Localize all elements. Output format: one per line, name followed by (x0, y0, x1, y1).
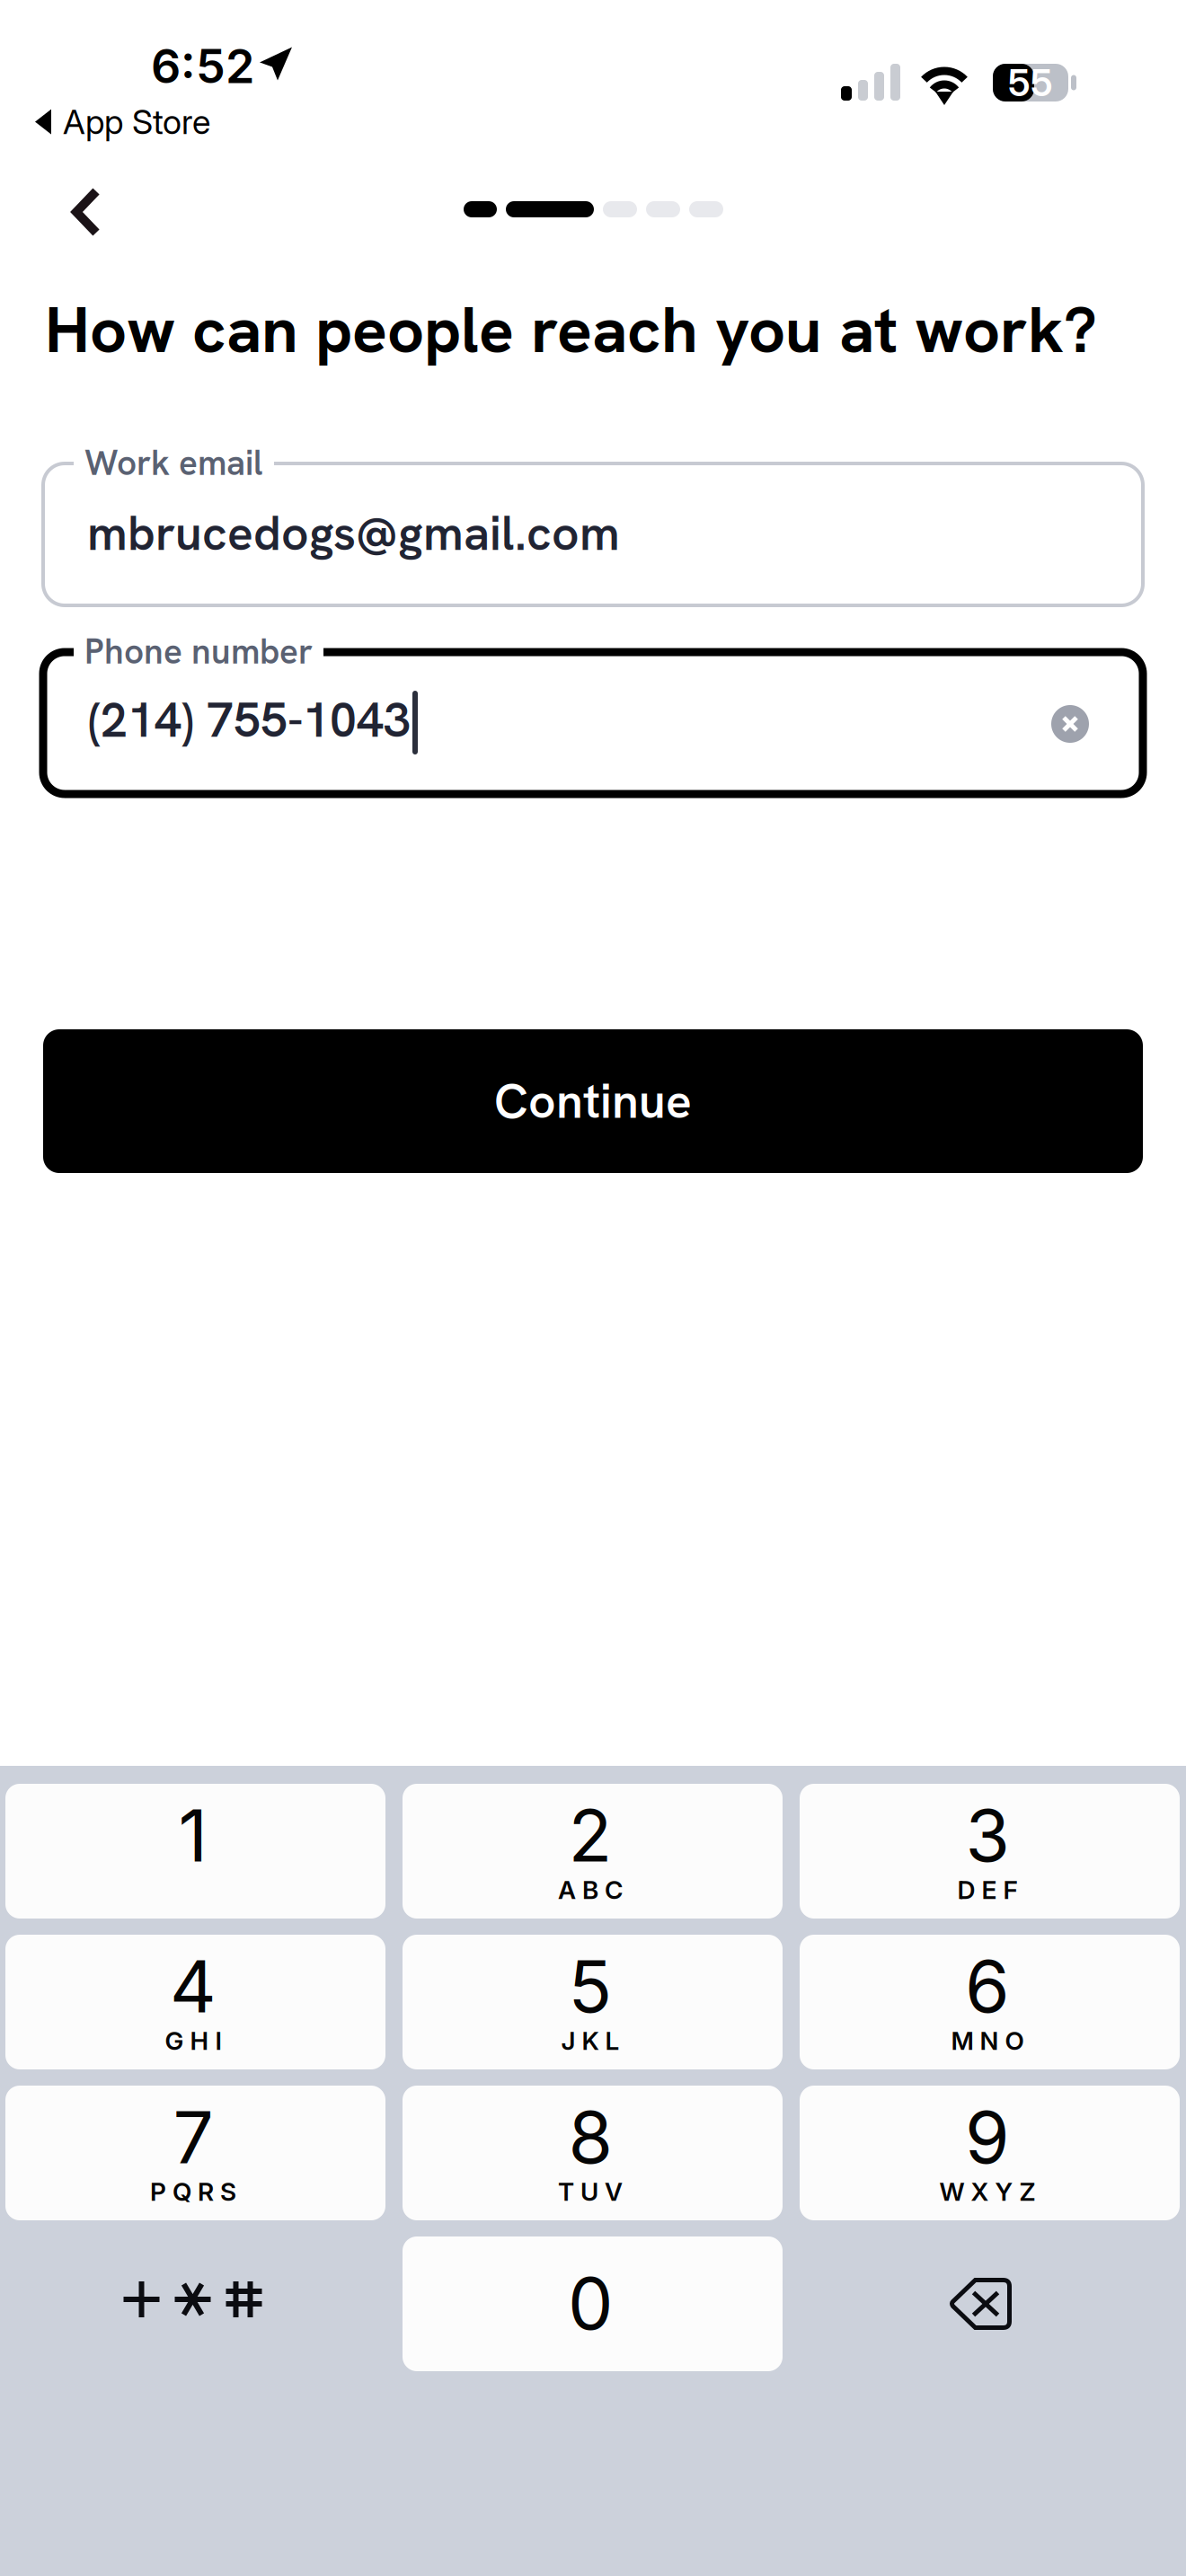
staticText: 0 (568, 2260, 613, 2347)
staticText: 6:52 (151, 38, 254, 94)
staticText: A B C (558, 1875, 623, 1905)
staticText: T U V (558, 2176, 623, 2207)
staticText: P Q R S (150, 2176, 236, 2207)
button[interactable]: Symbols (5, 2236, 385, 2371)
staticText: Phone number (84, 629, 313, 674)
staticText: 9 (965, 2094, 1010, 2181)
button[interactable]: Continue (43, 1029, 1143, 1173)
staticText: 6 (965, 1943, 1010, 2030)
staticText: 3 (965, 1792, 1009, 1879)
staticText: 55 (1008, 60, 1053, 105)
staticText: 1 (178, 1792, 208, 1879)
staticText: J K L (561, 2025, 620, 2056)
staticText: How can people reach you at work? (45, 287, 1097, 372)
staticText: W X Y Z (939, 2176, 1036, 2207)
button[interactable]: 5 (403, 1935, 783, 2069)
staticText: App Store (63, 101, 210, 142)
button[interactable]: 1 (5, 1784, 385, 1919)
staticText: 7 (173, 2094, 213, 2181)
button[interactable]: Clear text (1039, 693, 1102, 755)
button[interactable]: Back (31, 159, 142, 265)
button[interactable]: 0 (403, 2236, 783, 2371)
button[interactable]: 4 (5, 1935, 385, 2069)
staticText: Continue (494, 1070, 692, 1132)
staticText: G H I (165, 2025, 221, 2056)
button[interactable]: 9 (800, 2086, 1180, 2220)
button[interactable]: 2 (403, 1784, 783, 1919)
staticText: 2 (568, 1792, 612, 1879)
button[interactable]: 3 (800, 1784, 1180, 1919)
staticText: D E F (957, 1875, 1018, 1905)
button[interactable]: App Store (27, 96, 217, 147)
button[interactable]: Delete (800, 2236, 1180, 2371)
staticText: Work email (84, 440, 263, 485)
staticText: 5 (568, 1943, 612, 2030)
staticText: 4 (170, 1943, 217, 2030)
staticText: (214) 755-1043 (88, 689, 411, 751)
staticText: mbrucedogs@gmail.com (87, 502, 620, 565)
button[interactable]: 7 (5, 2086, 385, 2220)
button[interactable]: 6 (800, 1935, 1180, 2069)
button[interactable]: 8 (403, 2086, 783, 2220)
staticText: M N O (951, 2025, 1024, 2056)
staticText: 8 (568, 2094, 612, 2181)
